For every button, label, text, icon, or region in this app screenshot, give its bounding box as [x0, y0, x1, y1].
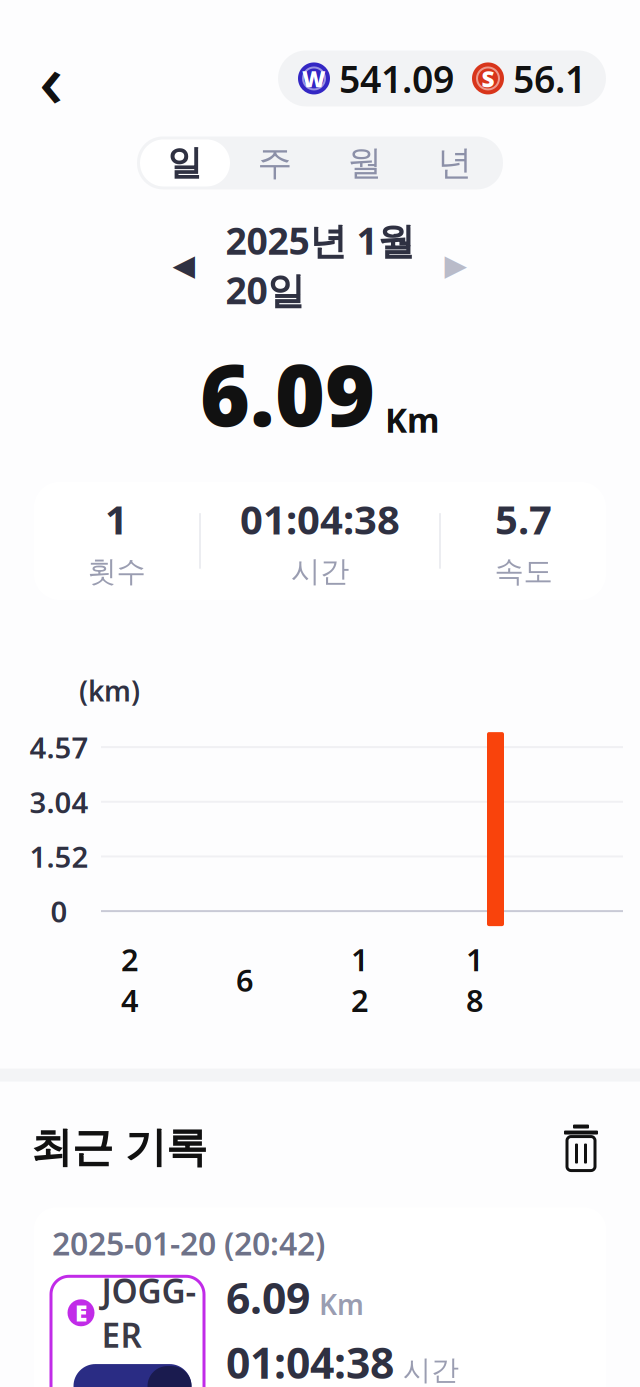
button[interactable]: 년 [410, 139, 500, 186]
staticText: 2025-01-20 (20:42) [52, 1222, 325, 1264]
button[interactable]: 주 [230, 139, 320, 186]
staticText: 1.52 [29, 837, 88, 876]
staticText: 3.04 [29, 782, 88, 821]
button[interactable]: Previous day [158, 243, 210, 287]
staticText: 6 [236, 959, 254, 1000]
staticText: 주 [257, 142, 292, 184]
staticText: (km) [79, 672, 140, 709]
staticText: ▶ [444, 248, 467, 282]
staticText: 24 [121, 939, 139, 1020]
staticText: 시간 [403, 1353, 459, 1387]
staticText: Km [319, 1286, 364, 1323]
button[interactable]: Delete records [553, 1120, 609, 1176]
staticText: 01:04:38 [226, 1334, 394, 1387]
staticText: JOGGER [101, 1268, 196, 1357]
button[interactable]: 월 [320, 139, 410, 186]
staticText: 56.1 [513, 54, 586, 103]
staticText: ◀ [172, 248, 195, 282]
staticText: 541.09 [339, 54, 454, 103]
button[interactable]: 일 [140, 139, 230, 186]
staticText: 일 [167, 142, 202, 184]
staticText: 6.09 [200, 337, 375, 450]
staticText: E [75, 1298, 87, 1328]
staticText: 0 [50, 892, 67, 931]
staticText: 1 [105, 492, 128, 545]
staticText: 18 [466, 939, 484, 1020]
button[interactable]: Points balance [278, 50, 606, 106]
staticText: W [302, 63, 326, 93]
staticText: 시간 [291, 553, 349, 589]
button[interactable]: Next day [430, 243, 482, 287]
staticText: Km [385, 398, 440, 442]
staticText: S [481, 63, 494, 93]
staticText: 횟수 [87, 553, 145, 589]
staticText: 01:04:38 [240, 492, 400, 545]
staticText: 6.09 [226, 1269, 310, 1326]
staticText: 12 [351, 939, 369, 1020]
button[interactable]: Back [19, 46, 83, 110]
staticText: 최근 기록 [31, 1122, 207, 1173]
staticText: 속도 [494, 553, 552, 589]
staticText: 월 [347, 142, 382, 184]
staticText: ‹ [39, 29, 63, 128]
button[interactable]: 2025-01-20 (20:42) [34, 1208, 606, 1387]
staticText: 년 [437, 142, 472, 184]
staticText: 5.7 [495, 492, 552, 545]
staticText: 4.57 [29, 728, 88, 767]
staticText: 2025년 1월 20일 [225, 215, 414, 315]
